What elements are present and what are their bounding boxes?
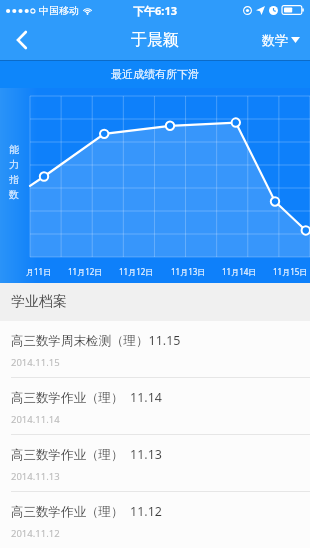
- staticText: 高三数学周末检测（理）11.15: [11, 332, 181, 349]
- button[interactable]: 高三数学作业（理） 11.13: [0, 435, 310, 491]
- staticText: 最近成绩有所下滑: [111, 67, 199, 81]
- staticText: 2014.11.13: [11, 470, 60, 483]
- staticText: 下午6:13: [133, 3, 177, 18]
- button[interactable]: 高三数学作业（理） 11.12: [0, 492, 310, 548]
- button[interactable]: 高三数学周末检测（理）11.15: [0, 321, 310, 377]
- staticText: 高三数学作业（理） 11.12: [11, 503, 162, 520]
- staticText: 高三数学作业（理） 11.13: [11, 446, 162, 463]
- staticText: 11月13日: [171, 266, 206, 277]
- staticText: 指: [9, 173, 19, 186]
- staticText: 中国移动: [39, 4, 79, 17]
- staticText: 11月12日: [68, 266, 103, 277]
- button[interactable]: 数学: [252, 20, 310, 60]
- staticText: 2014.11.14: [11, 413, 60, 426]
- staticText: 能: [9, 143, 19, 156]
- staticText: 11月15日: [273, 266, 308, 277]
- staticText: 月11日: [26, 266, 52, 277]
- staticText: 数学: [262, 32, 288, 48]
- staticText: 于晨颖: [131, 30, 179, 50]
- staticText: 11月14日: [222, 266, 257, 277]
- staticText: 力: [9, 158, 19, 171]
- staticText: 学业档案: [11, 293, 67, 311]
- staticText: 高三数学作业（理） 11.14: [11, 389, 162, 406]
- button[interactable]: 高三数学作业（理） 11.14: [0, 378, 310, 434]
- staticText: 数: [9, 188, 19, 201]
- staticText: 2014.11.12: [11, 527, 60, 540]
- staticText: 11月12日: [119, 266, 154, 277]
- staticText: 2014.11.15: [11, 356, 60, 369]
- button[interactable]: Back: [0, 20, 44, 60]
